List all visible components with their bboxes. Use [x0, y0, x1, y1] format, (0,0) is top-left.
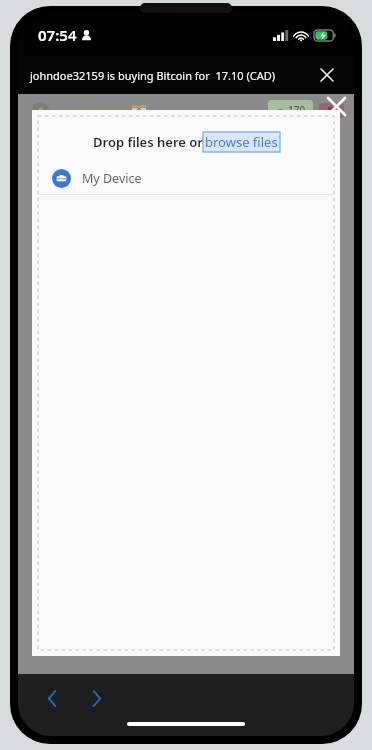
staticText: johndoe32159 is buying Bitcoin for 17.10… — [30, 68, 292, 83]
staticText: browse files — [205, 133, 278, 151]
button[interactable]: My Device — [32, 162, 340, 194]
staticText: 170 — [288, 103, 306, 117]
staticText: Drop files here or — [93, 133, 203, 151]
button[interactable]: Close — [322, 92, 350, 120]
button[interactable]: browse files — [203, 132, 280, 152]
staticText: CryptoMP5 — [57, 101, 126, 119]
button[interactable]: 170 — [268, 100, 313, 120]
button[interactable]: Dismiss notification — [314, 62, 340, 88]
button[interactable]: Back — [38, 684, 66, 712]
staticText: 07:54 — [38, 25, 77, 45]
staticText: My Device — [82, 170, 142, 187]
button[interactable]: Forward — [82, 684, 110, 712]
button[interactable]: Dislike — [319, 103, 344, 118]
